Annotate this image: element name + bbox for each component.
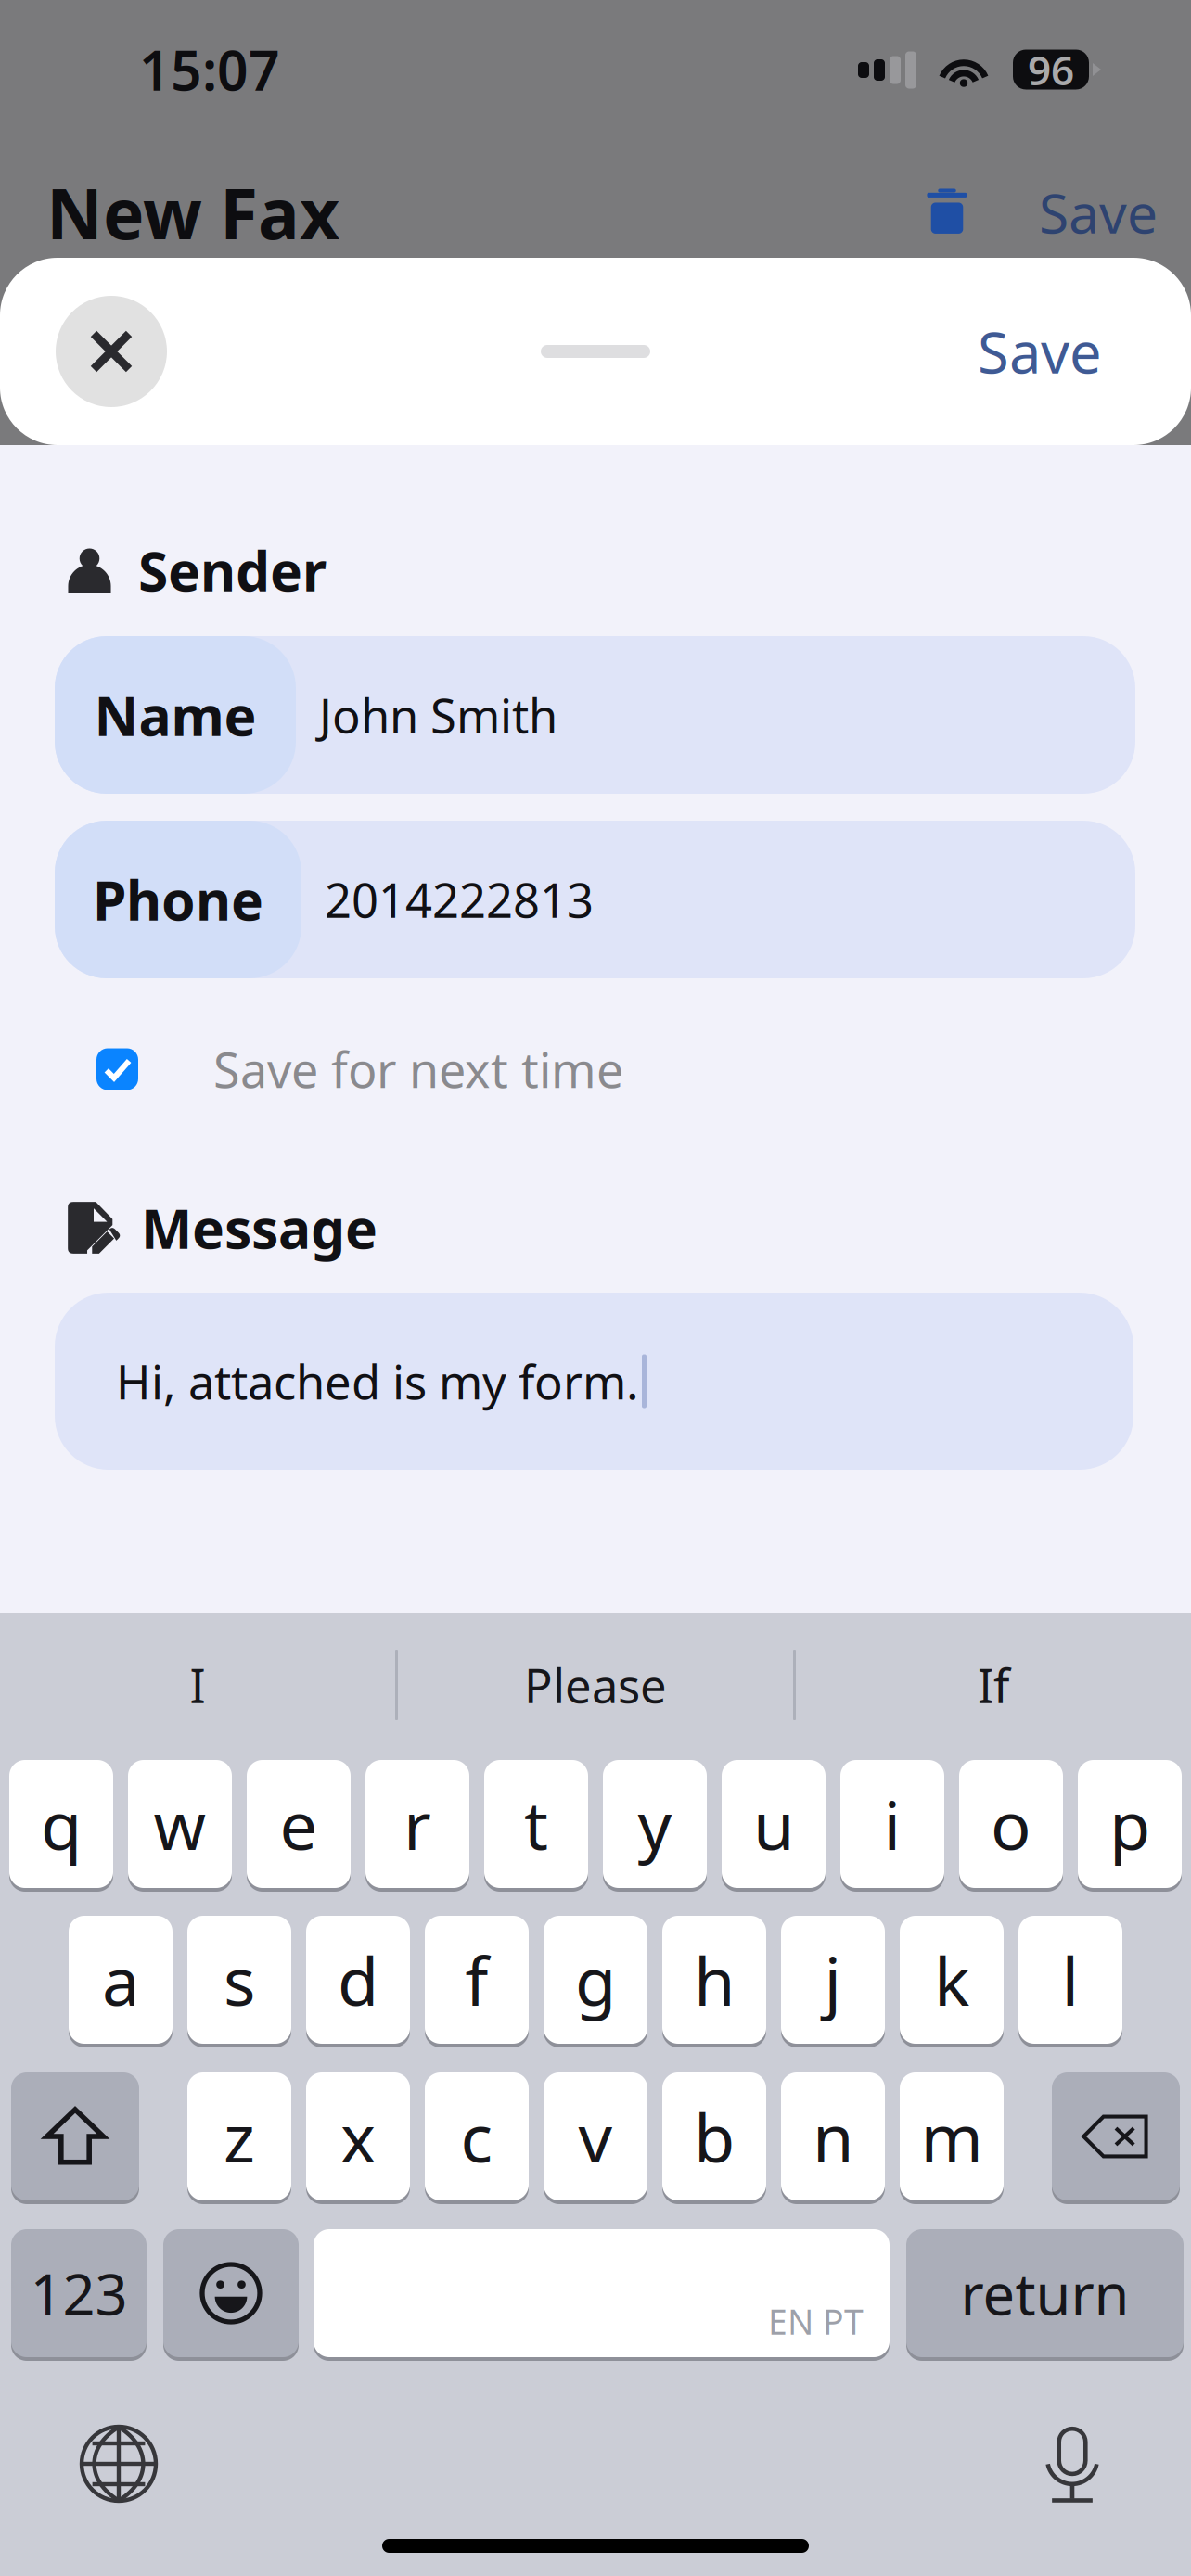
staticText: Phone	[93, 863, 263, 936]
staticText: n	[813, 2092, 853, 2181]
button[interactable]: o	[959, 1760, 1063, 1888]
button[interactable]: t	[484, 1760, 588, 1888]
button[interactable]: v	[544, 2072, 647, 2200]
button[interactable]: If	[796, 1630, 1191, 1740]
button[interactable]: Space	[314, 2229, 890, 2357]
button[interactable]: Save	[992, 172, 1191, 252]
button[interactable]: I	[0, 1630, 395, 1740]
staticText: z	[224, 2092, 255, 2181]
staticText: o	[991, 1780, 1031, 1868]
staticText: h	[694, 1935, 735, 2024]
button[interactable]: f	[425, 1916, 529, 2044]
button[interactable]: c	[425, 2072, 529, 2200]
staticText: Save for next time	[213, 1037, 623, 1101]
button[interactable]: p	[1078, 1760, 1182, 1888]
button[interactable]: g	[544, 1916, 647, 2044]
staticText: I	[190, 1654, 205, 1716]
button[interactable]: Save	[978, 297, 1191, 406]
staticText: EN PT	[768, 2298, 864, 2344]
staticText: x	[340, 2092, 376, 2181]
button[interactable]: y	[603, 1760, 707, 1888]
button[interactable]: s	[187, 1916, 291, 2044]
button[interactable]: Dictation	[1013, 2424, 1132, 2504]
button[interactable]: l	[1018, 1916, 1122, 2044]
staticText: return	[960, 2255, 1129, 2331]
staticText: i	[884, 1780, 901, 1868]
staticText: u	[753, 1780, 794, 1868]
staticText: e	[280, 1780, 318, 1868]
button[interactable]: Switch keyboard	[59, 2424, 178, 2504]
button[interactable]: h	[662, 1916, 766, 2044]
staticText: m	[921, 2092, 983, 2181]
staticText: f	[465, 1935, 488, 2024]
button[interactable]: Delete fax	[905, 172, 989, 252]
staticText: d	[338, 1935, 378, 2024]
staticText: v	[578, 2092, 613, 2181]
staticText: k	[934, 1935, 969, 2024]
staticText: g	[575, 1935, 616, 2024]
button[interactable]: return	[906, 2229, 1184, 2357]
staticText: Save	[978, 314, 1102, 389]
button[interactable]: u	[722, 1760, 826, 1888]
button[interactable]: m	[900, 2072, 1004, 2200]
staticText: 2014222813	[325, 868, 594, 931]
button[interactable]: Delete	[1052, 2072, 1180, 2200]
button[interactable]: 123	[11, 2229, 147, 2357]
button[interactable]: Close	[56, 296, 167, 407]
button[interactable]: q	[9, 1760, 113, 1888]
staticText: Sender	[138, 534, 327, 606]
button[interactable]: n	[781, 2072, 885, 2200]
staticText: Name	[94, 679, 256, 751]
button[interactable]: k	[900, 1916, 1004, 2044]
staticText: q	[41, 1780, 82, 1868]
button[interactable]: w	[128, 1760, 232, 1888]
staticText: a	[102, 1935, 139, 2024]
staticText: 15:07	[139, 33, 280, 106]
staticText: y	[638, 1780, 672, 1868]
staticText: w	[154, 1780, 206, 1868]
staticText: t	[524, 1780, 548, 1868]
staticText: b	[694, 2092, 735, 2181]
button[interactable]: i	[840, 1760, 944, 1888]
button[interactable]: Please	[398, 1630, 793, 1740]
staticText: Please	[524, 1654, 667, 1716]
button[interactable]: j	[781, 1916, 885, 2044]
staticText: l	[1062, 1935, 1079, 2024]
staticText: 123	[30, 2255, 128, 2331]
staticText: j	[824, 1935, 842, 2024]
staticText: r	[403, 1780, 431, 1868]
staticText: John Smith	[319, 684, 557, 746]
button[interactable]: Shift	[11, 2072, 139, 2200]
staticText: s	[224, 1935, 255, 2024]
button[interactable]: Emoji	[163, 2229, 299, 2357]
button[interactable]: a	[69, 1916, 173, 2044]
button[interactable]: r	[365, 1760, 469, 1888]
staticText: Message	[141, 1192, 378, 1264]
staticText: New Fax	[46, 166, 339, 258]
staticText: p	[1109, 1780, 1150, 1868]
button[interactable]: d	[306, 1916, 410, 2044]
button[interactable]: Save for next time	[0, 1040, 1191, 1098]
staticText: 96	[1028, 42, 1074, 97]
button[interactable]: b	[662, 2072, 766, 2200]
button[interactable]: z	[187, 2072, 291, 2200]
staticText: If	[978, 1654, 1009, 1716]
staticText: Hi, attached is my form.	[116, 1350, 639, 1412]
button[interactable]: e	[247, 1760, 351, 1888]
staticText: Save	[1039, 176, 1158, 248]
button[interactable]: x	[306, 2072, 410, 2200]
staticText: c	[461, 2092, 493, 2181]
